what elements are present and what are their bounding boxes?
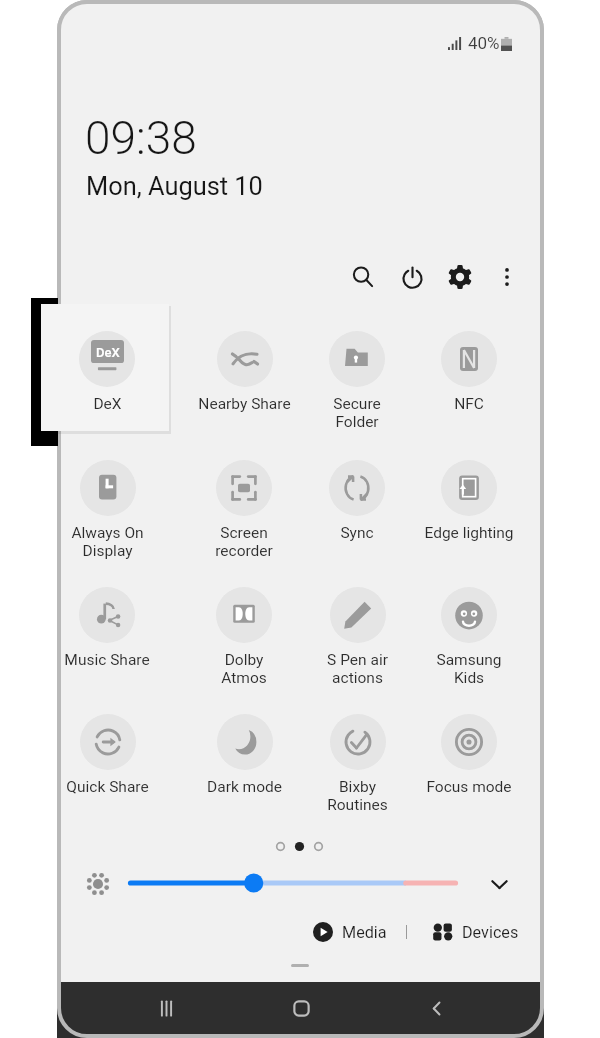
staticText: S Pen air actions — [327, 651, 388, 687]
button[interactable]: Home — [275, 983, 327, 1033]
button[interactable]: Back — [410, 983, 462, 1033]
button[interactable]: Devices — [427, 916, 525, 948]
button[interactable]: Screen recorder — [188, 460, 300, 562]
button[interactable]: Bixby Routines — [301, 714, 413, 816]
button[interactable]: S Pen air actions — [301, 587, 413, 689]
button[interactable]: More options — [486, 256, 528, 298]
staticText: Always On Display — [71, 524, 144, 560]
staticText: NFC — [454, 395, 484, 413]
staticText: Dolby Atmos — [221, 651, 267, 687]
staticText: DeX — [96, 345, 120, 360]
staticText: Dark mode — [207, 778, 282, 796]
staticText: Media — [342, 923, 387, 942]
button[interactable]: Dolby Atmos — [188, 587, 300, 689]
button[interactable]: Brightness slider — [128, 872, 458, 894]
staticText: Mon, August 10 — [86, 171, 263, 201]
button[interactable]: Dark mode — [188, 714, 300, 816]
button[interactable]: Quick Share — [60, 714, 163, 816]
staticText: Sync — [340, 524, 374, 542]
button[interactable]: DeX — [41, 304, 169, 431]
staticText: Focus mode — [426, 778, 512, 796]
staticText: Quick Share — [66, 778, 149, 796]
staticText: Devices — [462, 923, 519, 942]
button[interactable]: Secure Folder — [301, 331, 413, 433]
button[interactable]: NFC — [413, 331, 525, 433]
staticText: 09:38 — [85, 111, 197, 165]
button[interactable]: Music Share — [60, 587, 163, 689]
button[interactable]: Samsung Kids — [413, 587, 525, 689]
button[interactable]: Always On Display — [60, 460, 163, 562]
button[interactable]: Focus mode — [413, 714, 525, 816]
staticText: Bixby Routines — [327, 778, 388, 814]
staticText: Music Share — [64, 651, 150, 669]
button[interactable]: Recents — [140, 983, 192, 1033]
button[interactable]: Sync — [301, 460, 413, 562]
button[interactable]: Settings — [439, 256, 481, 298]
button[interactable]: Power off — [391, 256, 433, 298]
staticText: 40% — [468, 33, 500, 53]
staticText: Screen recorder — [215, 524, 273, 560]
button[interactable]: Nearby Share — [188, 331, 300, 433]
staticText: Samsung Kids — [436, 651, 502, 687]
staticText: Edge lighting — [424, 524, 514, 542]
staticText: DeX — [93, 395, 122, 413]
staticText: Nearby Share — [198, 395, 291, 413]
button[interactable]: Edge lighting — [413, 460, 525, 562]
staticText: Secure Folder — [333, 395, 381, 431]
button[interactable]: Search — [342, 256, 384, 298]
button[interactable]: Brightness — [86, 872, 110, 896]
button[interactable]: Expand — [482, 870, 516, 898]
button[interactable]: Media — [307, 916, 393, 948]
